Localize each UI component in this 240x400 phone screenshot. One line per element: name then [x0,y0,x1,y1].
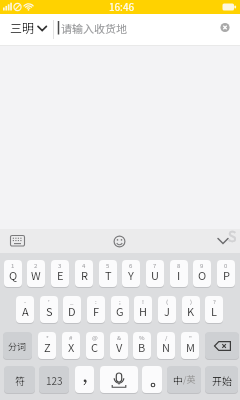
staticText: V [116,339,123,355]
staticText: B [138,339,146,355]
staticText: 中 [173,373,183,387]
staticText: * [46,333,49,342]
button[interactable]: & [110,332,128,360]
staticText: ? [213,297,216,306]
staticText: Y [128,267,134,283]
button[interactable]: ; [111,296,129,324]
staticText: 5 [106,261,110,270]
button[interactable]: 2 [27,260,45,288]
button[interactable]: # [62,332,80,360]
staticText: - [24,297,27,306]
button[interactable]: ) [182,296,200,324]
button[interactable]: 123 [39,366,69,394]
button[interactable]: _ [63,296,81,324]
button[interactable] [100,366,138,394]
button[interactable]: ! [134,296,152,324]
staticText: _ [70,297,74,306]
staticText: 6 [129,261,133,270]
button[interactable]: ? [205,296,223,324]
button[interactable]: ( [158,296,176,324]
button[interactable]: 4 [75,260,93,288]
button[interactable]: 9 [193,260,211,288]
staticText: " [189,333,192,342]
staticText: J [164,303,170,319]
staticText: X [68,339,75,355]
button[interactable]: 7 [146,260,164,288]
staticText: /英 [183,373,196,386]
staticText: 3 [58,261,62,270]
staticText: I [177,267,181,283]
button[interactable]: 8 [170,260,188,288]
staticText: 符 [15,373,25,387]
button[interactable] [75,366,94,394]
button[interactable]: 0 [217,260,235,288]
staticText: : [95,297,97,306]
button[interactable]: " [181,332,199,360]
staticText: 8 [177,261,181,270]
staticText: 分词 [8,340,27,353]
button[interactable] [210,229,240,253]
staticText: F [93,303,100,319]
staticText: 16:46 [109,0,134,13]
staticText: 1 [11,261,15,270]
staticText: 请输入收货地 [61,20,127,36]
button[interactable] [205,332,239,360]
staticText: M [186,339,195,355]
staticText: 4 [82,261,86,270]
button[interactable]: 1 [4,260,22,288]
staticText: 7 [153,261,157,270]
staticText: 9 [200,261,204,270]
staticText: @ [92,333,98,342]
staticText: ! [142,297,144,306]
staticText: U [151,267,159,283]
button[interactable]: 符 [4,366,35,394]
button[interactable]: 3 [51,260,69,288]
staticText: 开始 [212,373,232,387]
staticText: H [139,303,148,319]
button[interactable]: 请输入收货地 [56,14,216,42]
button[interactable]: 5 [99,260,117,288]
staticText: O [198,267,207,283]
staticText: 三明 [10,19,35,36]
staticText: C [91,339,99,355]
staticText: 2 [34,261,38,270]
button[interactable]: 6 [122,260,140,288]
staticText: Q [9,267,18,283]
staticText: T [105,267,112,283]
staticText: K [187,303,195,319]
button[interactable]: ' [40,296,58,324]
staticText: W [31,267,41,283]
staticText: N [162,339,170,355]
staticText: E [57,267,64,283]
staticText: S [46,303,53,319]
staticText: 123 [46,373,63,387]
staticText: Z [44,339,51,355]
staticText: R [81,267,88,283]
button[interactable]: * [38,332,56,360]
staticText: P [223,267,230,283]
button[interactable]: 三明 [4,15,50,40]
button[interactable]: 开始 [205,366,238,394]
staticText: ) [190,297,193,306]
staticText: / [165,333,168,342]
button[interactable]: / [157,332,175,360]
staticText: D [68,303,76,319]
staticText: S [228,226,237,246]
button[interactable]: - [16,296,34,324]
button[interactable]: % [133,332,151,360]
button[interactable]: 分词 [3,332,32,360]
button[interactable]: @ [86,332,104,360]
staticText: 0 [224,261,228,270]
button[interactable]: 中 [167,366,201,394]
staticText: G [116,303,124,319]
staticText: ' [48,297,50,306]
button[interactable] [105,229,135,253]
button[interactable] [4,229,34,253]
staticText: % [139,333,145,342]
staticText: ; [119,297,121,306]
button[interactable]: : [87,296,105,324]
staticText: L [211,303,217,319]
staticText: # [69,333,73,342]
staticText: & [117,333,122,342]
button[interactable] [142,366,162,394]
